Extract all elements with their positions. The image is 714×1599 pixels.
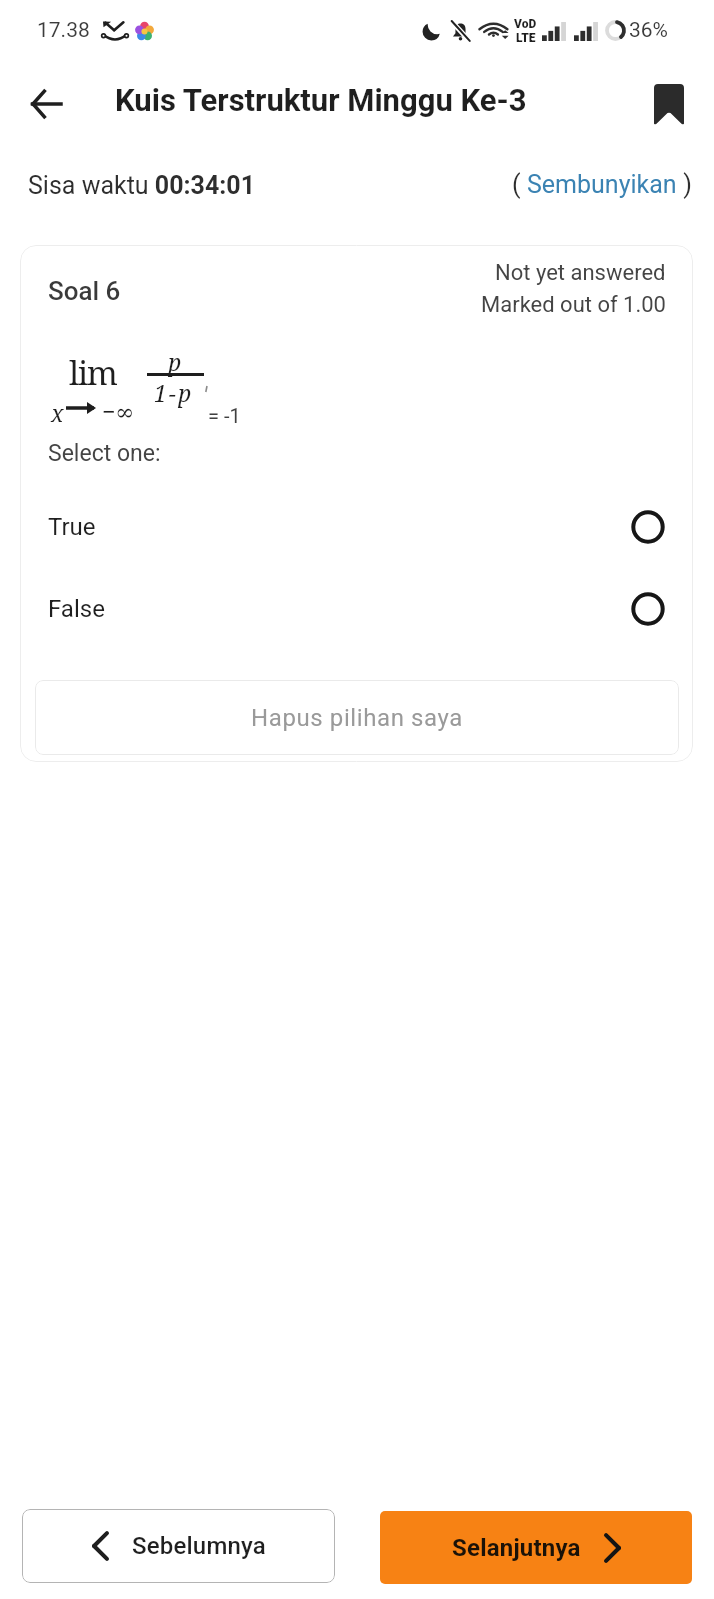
staticText: Soal 6 <box>48 276 121 306</box>
staticText: Selanjutnya <box>452 1534 581 1562</box>
staticText: 36% <box>629 18 668 43</box>
button[interactable]: ( <box>512 170 692 199</box>
staticText: = -1 <box>208 404 241 427</box>
button[interactable]: True <box>20 497 693 557</box>
staticText: Not yet answered <box>495 260 666 286</box>
staticText: p <box>168 346 182 377</box>
staticText: lim <box>69 350 117 395</box>
staticText: ) <box>677 170 692 199</box>
staticText: False <box>48 595 105 623</box>
staticText: LTE <box>516 31 536 45</box>
staticText: Select one: <box>48 440 161 467</box>
staticText: 1−p <box>154 377 194 408</box>
staticText: ( <box>512 170 527 199</box>
staticText: Sebelumnya <box>132 1532 266 1560</box>
button[interactable]: Hapus pilihan saya <box>35 680 679 755</box>
staticText: True <box>48 513 96 541</box>
staticText: Hapus pilihan saya <box>251 704 463 732</box>
staticText: −∞ <box>102 395 135 426</box>
button[interactable]: Sebelumnya <box>22 1509 335 1583</box>
staticText: Sisa waktu 00:34:01 <box>28 171 255 200</box>
button[interactable]: Selanjutnya <box>380 1511 692 1584</box>
staticText: x <box>51 397 64 428</box>
staticText: Marked out of 1.00 <box>481 292 666 318</box>
staticText: VoD <box>514 17 537 31</box>
button[interactable]: Bookmark <box>640 75 698 133</box>
button[interactable]: False <box>20 579 693 639</box>
button[interactable]: Back <box>17 75 75 133</box>
staticText: Kuis Terstruktur Minggu Ke-3 <box>115 82 527 118</box>
staticText: 17.38 <box>37 18 90 43</box>
staticText: Sembunyikan <box>527 170 677 199</box>
